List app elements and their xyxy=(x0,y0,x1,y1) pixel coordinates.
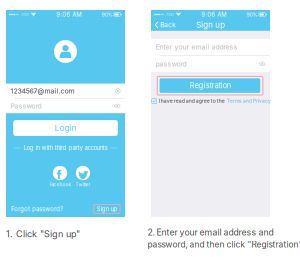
button[interactable]: Terms and Privacy xyxy=(227,98,271,104)
staticText: Log in with third party accounts xyxy=(23,144,107,151)
button[interactable]: Login xyxy=(13,120,118,136)
staticText: 9:06 AM xyxy=(201,11,226,18)
staticText: Terms and Privacy xyxy=(227,98,271,104)
staticText: Password xyxy=(10,102,41,110)
staticText: 90% xyxy=(246,11,257,18)
button[interactable]: Back xyxy=(155,21,176,29)
staticText: AT&T xyxy=(166,12,174,17)
button[interactable]: Agree to terms and privacy xyxy=(152,98,157,104)
staticText: I have read and agree to the xyxy=(159,98,225,104)
staticText: Forgot password? xyxy=(11,205,63,213)
staticText: Facebook xyxy=(49,182,70,187)
button[interactable]: Registration xyxy=(160,78,260,93)
staticText: 2. Enter your email address and xyxy=(147,227,273,237)
staticText: 9:06 AM xyxy=(56,11,81,18)
staticText: Sign up xyxy=(96,205,117,213)
button[interactable]: Forgot password? xyxy=(11,205,63,213)
staticText: 90% xyxy=(101,11,112,18)
staticText: Back xyxy=(160,21,176,29)
staticText: 1234567@mail.com xyxy=(10,87,74,95)
button[interactable]: Sign up xyxy=(94,204,120,214)
staticText: Login xyxy=(54,123,76,133)
staticText: password, and then click "Registration" xyxy=(147,239,300,250)
button[interactable]: Facebook xyxy=(48,166,71,187)
staticText: AT&T xyxy=(21,12,29,17)
staticText: 1. Click "Sign up" xyxy=(6,228,80,239)
staticText: Sign up xyxy=(196,20,225,30)
staticText: Registration xyxy=(189,81,230,90)
staticText: Enter your email address xyxy=(155,43,237,51)
staticText: password xyxy=(155,60,186,68)
button[interactable]: Twitter xyxy=(71,166,94,187)
staticText: Twitter xyxy=(75,182,90,187)
